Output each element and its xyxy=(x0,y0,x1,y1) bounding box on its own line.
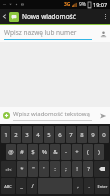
button[interactable]: 7 xyxy=(66,126,76,143)
staticText: ( xyxy=(87,148,89,156)
staticText: . xyxy=(88,182,90,190)
button[interactable]: ? xyxy=(83,161,93,177)
button[interactable]: @ xyxy=(6,144,16,160)
staticText: $ xyxy=(31,148,35,156)
button[interactable]: More options xyxy=(100,9,110,24)
staticText: ! xyxy=(76,165,78,173)
staticText: " xyxy=(32,165,35,173)
staticText: @ xyxy=(8,148,14,156)
button[interactable]: Add recipient from contacts xyxy=(96,27,110,41)
staticText: ' xyxy=(43,165,45,173)
staticText: ? xyxy=(87,165,90,173)
button[interactable]: % xyxy=(39,144,49,160)
button[interactable]: 3 xyxy=(22,126,32,143)
staticText: 8 xyxy=(80,131,84,139)
button[interactable]: 8 xyxy=(77,126,87,143)
staticText: 19:07 xyxy=(93,1,108,8)
button[interactable]: Wpisz wiadomość tekstową xyxy=(13,110,92,121)
button[interactable]: # xyxy=(17,144,27,160)
staticText: * xyxy=(20,165,24,173)
button[interactable]: 0 xyxy=(99,126,109,143)
staticText: Wpisz nazwę lub numer xyxy=(4,28,77,37)
staticText: 7 xyxy=(69,131,73,139)
staticText: , xyxy=(77,182,79,190)
staticText: 9 xyxy=(91,131,95,139)
button[interactable]: ! xyxy=(72,161,82,177)
staticText: 0 xyxy=(102,131,106,139)
staticText: 1 xyxy=(4,131,8,139)
button[interactable]: 2 xyxy=(11,126,21,143)
button[interactable]: 6 xyxy=(55,126,65,143)
button[interactable]: Add attachment xyxy=(0,109,13,122)
button[interactable]: ( xyxy=(83,144,93,160)
staticText: Nowa wiadomość xyxy=(22,12,76,21)
staticText: & xyxy=(53,148,58,156)
button[interactable]: . xyxy=(84,178,94,194)
button[interactable]: * xyxy=(17,161,27,177)
button[interactable]: ' xyxy=(39,161,49,177)
staticText: ; xyxy=(65,165,67,173)
button[interactable]: Back xyxy=(0,9,9,24)
button[interactable]: , xyxy=(73,178,83,194)
staticText: 3G xyxy=(64,1,71,8)
staticText: ABC xyxy=(4,184,12,189)
staticText: + xyxy=(75,148,79,156)
button[interactable]: - xyxy=(61,144,71,160)
button[interactable]: / xyxy=(27,178,37,194)
button[interactable]: 5 xyxy=(44,126,54,143)
staticText: / xyxy=(31,182,34,190)
button[interactable]: $ xyxy=(28,144,38,160)
button[interactable]: ) xyxy=(94,144,104,160)
button[interactable]: Send xyxy=(95,108,110,123)
staticText: # xyxy=(20,148,24,156)
button[interactable]: _ xyxy=(16,178,26,194)
button[interactable]: 9 xyxy=(88,126,98,143)
staticText: 9% xyxy=(79,1,87,8)
button[interactable]: =\< xyxy=(1,161,16,177)
staticText: % xyxy=(42,148,47,156)
button[interactable]: Enter xyxy=(95,178,109,194)
staticText: 6 xyxy=(58,131,62,139)
staticText: ) xyxy=(98,148,100,156)
button[interactable]: Backspace xyxy=(94,161,109,177)
staticText: =\< xyxy=(5,167,12,172)
staticText: 2 xyxy=(14,131,18,139)
button[interactable]: " xyxy=(28,161,38,177)
button[interactable]: ; xyxy=(61,161,71,177)
button[interactable]: : xyxy=(50,161,60,177)
button[interactable]: + xyxy=(72,144,82,160)
staticText: 4 xyxy=(36,131,40,139)
button[interactable]: & xyxy=(50,144,60,160)
button[interactable]: Wpisz nazwę lub numer xyxy=(4,28,92,40)
staticText: _ xyxy=(20,182,23,190)
staticText: 5 xyxy=(47,131,51,139)
button[interactable]: ABC xyxy=(1,178,15,194)
staticText: Enter xyxy=(97,184,108,189)
button[interactable]: 1 xyxy=(1,126,10,143)
staticText: : xyxy=(54,165,56,173)
button[interactable]: 4 xyxy=(33,126,43,143)
staticText: 3 xyxy=(25,131,29,139)
staticText: - xyxy=(65,148,67,156)
staticText: Wpisz wiadomość tekstową xyxy=(13,110,90,118)
